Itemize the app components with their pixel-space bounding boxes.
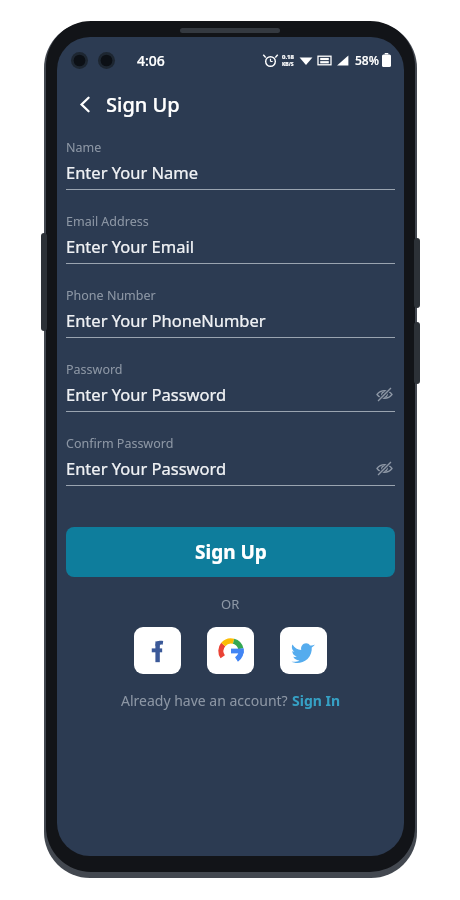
button[interactable]: Toggle password visibility <box>373 457 395 479</box>
staticText: Email Address <box>66 213 149 230</box>
staticText: Sign Up <box>195 539 267 565</box>
staticText: Enter Your Password <box>66 457 373 479</box>
staticText: Name <box>66 139 102 156</box>
button[interactable]: Sign up with Twitter <box>280 627 327 674</box>
button[interactable]: Name <box>66 139 395 190</box>
button[interactable]: Sign up with Google <box>207 627 254 674</box>
staticText: Enter Your Name <box>66 161 395 183</box>
staticText: Password <box>66 361 123 378</box>
button[interactable]: Toggle password visibility <box>373 383 395 405</box>
staticText: Enter Your Email <box>66 235 395 257</box>
staticText: Enter Your PhoneNumber <box>66 309 395 331</box>
staticText: 58% <box>355 52 379 68</box>
staticText: KB/S <box>282 61 294 68</box>
button[interactable]: Sign Up <box>66 527 395 577</box>
button[interactable]: Already have an account? <box>66 691 395 710</box>
button[interactable]: Email Address <box>66 213 395 264</box>
staticText: 0.18 <box>282 53 294 61</box>
staticText: Enter Your Password <box>66 383 373 405</box>
button[interactable]: Back <box>70 89 100 119</box>
button[interactable]: Phone Number <box>66 287 395 338</box>
staticText: Already have an account? <box>121 691 292 710</box>
button[interactable]: Sign up with Facebook <box>134 627 181 674</box>
button[interactable]: Password <box>66 361 395 412</box>
staticText: Phone Number <box>66 287 156 304</box>
staticText: OR <box>221 595 240 613</box>
staticText: 4:06 <box>137 51 165 70</box>
staticText: Confirm Password <box>66 435 174 452</box>
staticText: Sign Up <box>106 91 180 118</box>
staticText: Sign In <box>292 691 341 710</box>
button[interactable]: Confirm Password <box>66 435 395 486</box>
